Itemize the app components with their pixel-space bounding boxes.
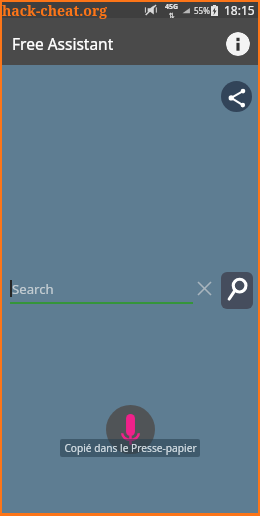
staticText: 55% xyxy=(194,5,210,16)
button[interactable]: Share xyxy=(221,81,252,112)
staticText: Copié dans le Presse-papier xyxy=(64,441,197,455)
staticText: hack-cheat.org xyxy=(2,1,108,20)
staticText: Free Assistant xyxy=(12,33,114,54)
button[interactable]: Clear text xyxy=(192,276,216,300)
button[interactable]: Voice input xyxy=(106,405,155,454)
button[interactable]: Search xyxy=(221,272,253,309)
staticText: ⇅ xyxy=(169,12,175,18)
button[interactable]: Info xyxy=(226,32,250,56)
staticText: 18:15 xyxy=(224,2,255,18)
staticText: 45G xyxy=(165,2,179,12)
staticText: Search xyxy=(12,280,54,298)
